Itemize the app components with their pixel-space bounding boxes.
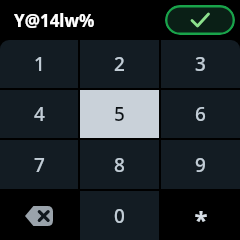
staticText: Y@14lw% xyxy=(14,9,95,32)
staticText: 1 xyxy=(34,51,45,77)
staticText: 8 xyxy=(114,152,125,178)
button[interactable]: 5 xyxy=(80,90,159,138)
staticText: * xyxy=(194,203,208,236)
button[interactable]: Backspace xyxy=(0,191,78,240)
button[interactable]: 1 xyxy=(0,40,78,88)
button[interactable]: 8 xyxy=(80,140,159,189)
staticText: 6 xyxy=(195,101,206,127)
staticText: 4 xyxy=(34,101,45,127)
staticText: 5 xyxy=(114,101,125,127)
staticText: 3 xyxy=(195,51,206,77)
button[interactable]: 3 xyxy=(161,40,240,88)
button[interactable]: 2 xyxy=(80,40,159,88)
button[interactable]: 7 xyxy=(0,140,78,189)
staticText: 9 xyxy=(195,152,206,178)
staticText: 0 xyxy=(114,203,125,229)
button[interactable]: 4 xyxy=(0,90,78,138)
button[interactable]: 6 xyxy=(161,90,240,138)
button[interactable]: * xyxy=(161,191,240,240)
staticText: 7 xyxy=(34,152,45,178)
button[interactable]: 0 xyxy=(80,191,159,240)
button[interactable]: 9 xyxy=(161,140,240,189)
button[interactable]: Confirm xyxy=(165,5,235,35)
staticText: 2 xyxy=(114,51,125,77)
